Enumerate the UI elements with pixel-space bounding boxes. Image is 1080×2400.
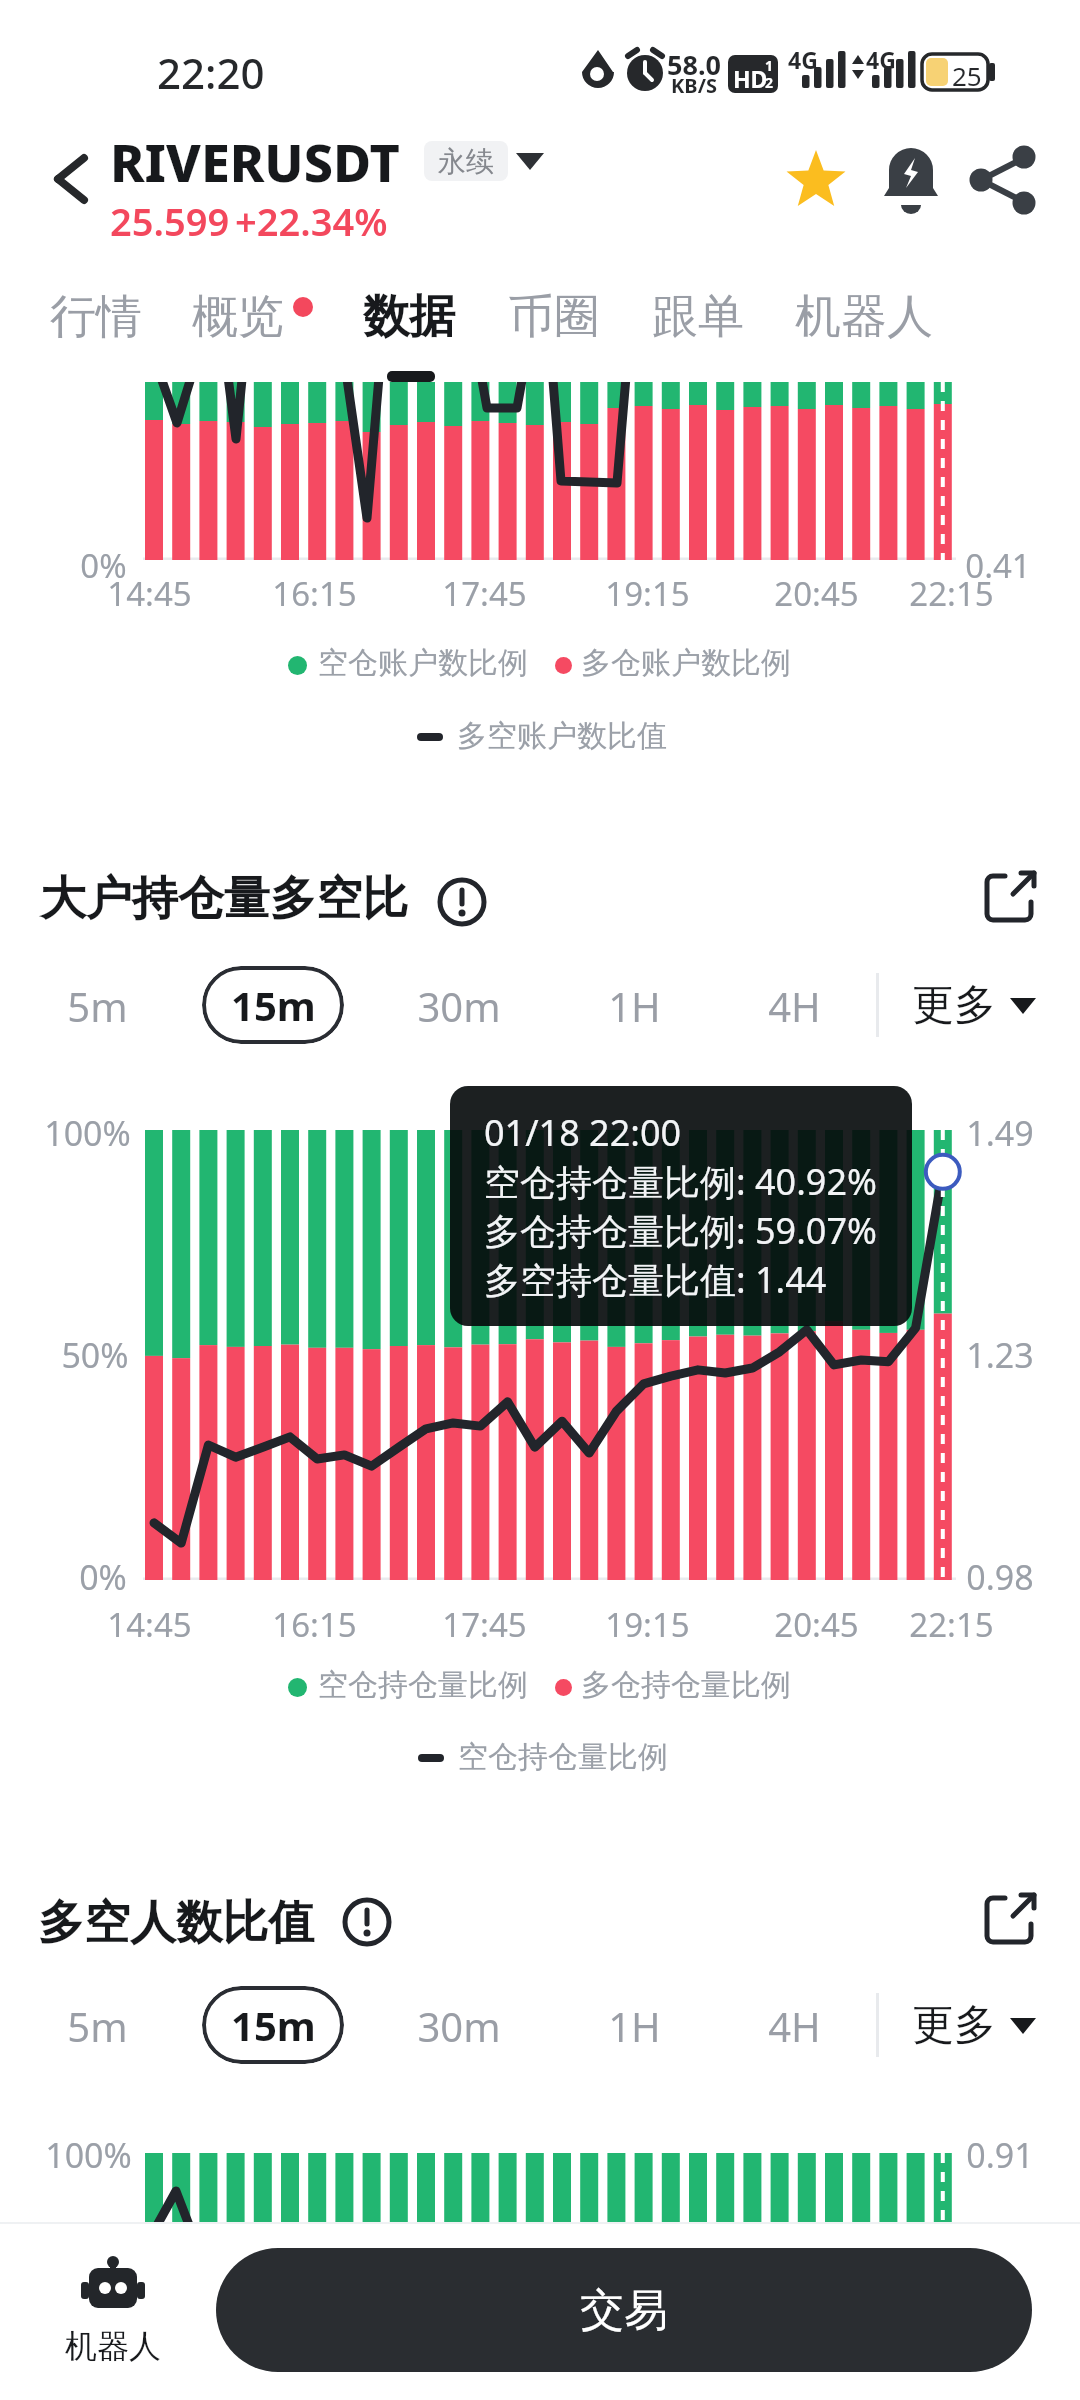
staticText: 22:15 <box>909 571 994 616</box>
button[interactable] <box>404 1989 514 2061</box>
staticText: 25.599 <box>110 195 230 247</box>
staticText: 30m <box>417 979 501 1033</box>
button[interactable] <box>584 1989 684 2061</box>
staticText: 58.0 <box>667 46 721 83</box>
staticText: 16:15 <box>272 571 357 616</box>
staticText: 22:20 <box>157 44 265 101</box>
staticText: 4H <box>768 1999 821 2053</box>
button[interactable] <box>57 1989 147 2061</box>
staticText: 14:45 <box>107 571 192 616</box>
staticText: 20:45 <box>774 571 859 616</box>
staticText: 0.98 <box>966 1554 1034 1600</box>
staticText: 50% <box>61 1332 129 1378</box>
staticText: 20:45 <box>774 1602 859 1647</box>
staticText: 0% <box>79 1554 127 1600</box>
button[interactable] <box>744 969 844 1041</box>
staticText: 15m <box>231 978 316 1032</box>
staticText: 永续 <box>438 144 494 179</box>
staticText: 0.41 <box>965 543 1031 588</box>
staticText: HD <box>733 63 768 94</box>
button[interactable] <box>972 143 1044 215</box>
staticText: 0% <box>80 543 127 588</box>
button[interactable]: 交易 <box>216 2248 1032 2372</box>
staticText: 多仓持仓量比例: 59.07% <box>484 1206 877 1255</box>
button[interactable]: 更多 <box>892 1989 1062 2061</box>
staticText: 多空持仓量比值: 1.44 <box>484 1255 827 1304</box>
staticText: 25 <box>952 58 982 93</box>
staticText: 1.49 <box>966 1110 1034 1156</box>
staticText: 多仓账户数比例 <box>581 644 791 682</box>
staticText: 多空人数比值 <box>38 1894 314 1952</box>
staticText: 1H <box>608 979 661 1033</box>
staticText: 17:45 <box>442 571 527 616</box>
button[interactable] <box>875 143 947 215</box>
staticText: 大户持仓量多空比 <box>40 870 408 928</box>
button[interactable] <box>962 1874 1052 1964</box>
staticText: 100% <box>44 1110 131 1156</box>
staticText: KB/S <box>671 72 717 99</box>
staticText: 17:45 <box>442 1602 527 1647</box>
button[interactable]: 15m <box>202 966 344 1044</box>
staticText: 0.91 <box>966 2132 1034 2178</box>
button[interactable]: 永续 <box>424 141 508 181</box>
button[interactable] <box>780 143 852 215</box>
staticText: 多仓持仓量比例 <box>581 1666 791 1704</box>
button[interactable] <box>744 1989 844 2061</box>
staticText: 22:15 <box>909 1602 994 1647</box>
staticText: 更多 <box>912 979 996 1032</box>
button[interactable]: 机器人 <box>48 2234 178 2384</box>
button[interactable]: 更多 <box>892 969 1062 1041</box>
staticText: 空仓账户数比例 <box>318 644 528 682</box>
staticText: 1.23 <box>966 1332 1034 1378</box>
staticText: 19:15 <box>605 571 690 616</box>
staticText: 4G <box>788 44 818 75</box>
staticText: 100% <box>45 2132 132 2178</box>
staticText: 空仓持仓量比例 <box>458 1738 668 1776</box>
button[interactable] <box>404 969 514 1041</box>
button[interactable] <box>34 140 104 220</box>
staticText: 01/18 22:00 <box>484 1108 682 1157</box>
staticText: 多空账户数比值 <box>457 717 667 755</box>
staticText: 1 <box>765 56 774 75</box>
staticText: 4H <box>768 979 821 1033</box>
staticText: 2 <box>765 73 774 92</box>
staticText: 30m <box>417 1999 501 2053</box>
staticText: 交易 <box>580 2283 668 2338</box>
staticText: 1H <box>608 1999 661 2053</box>
staticText: 更多 <box>912 1999 996 2052</box>
staticText: RIVERUSDT <box>110 126 400 197</box>
staticText: 5m <box>67 979 128 1033</box>
staticText: 4G <box>866 44 896 75</box>
staticText: 15m <box>231 1998 316 2052</box>
staticText: 空仓持仓量比例 <box>318 1666 528 1704</box>
staticText: 19:15 <box>605 1602 690 1647</box>
staticText: 机器人 <box>65 2326 161 2366</box>
button[interactable]: 15m <box>202 1986 344 2064</box>
button[interactable] <box>584 969 684 1041</box>
staticText: 14:45 <box>107 1602 192 1647</box>
button[interactable] <box>57 969 147 1041</box>
button[interactable] <box>962 852 1052 942</box>
staticText: +22.34% <box>235 195 388 247</box>
staticText: 16:15 <box>272 1602 357 1647</box>
staticText: 5m <box>67 1999 128 2053</box>
staticText: 空仓持仓量比例: 40.92% <box>484 1157 877 1206</box>
